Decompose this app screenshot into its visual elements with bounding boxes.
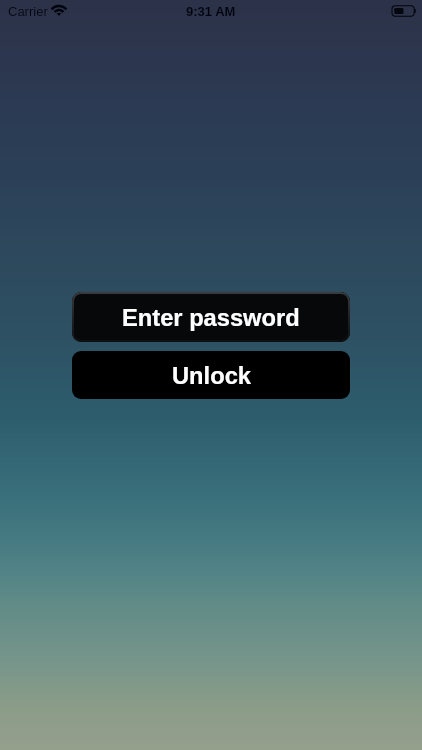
staticText: 9:31 AM xyxy=(186,4,236,19)
other: Battery xyxy=(392,5,416,17)
button[interactable]: Unlock xyxy=(72,351,350,399)
staticText: Unlock xyxy=(172,363,251,389)
button[interactable]: Enter password xyxy=(72,292,350,342)
staticText: Enter password xyxy=(122,305,300,331)
staticText: Carrier xyxy=(8,4,48,19)
